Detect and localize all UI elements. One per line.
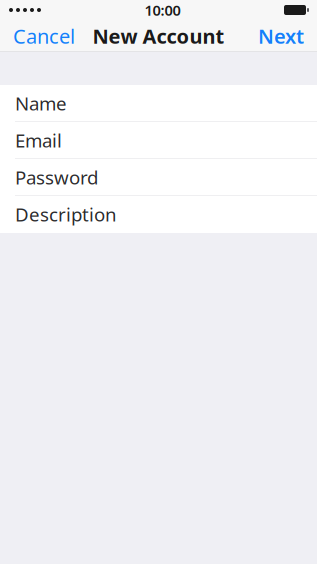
staticText: Description	[15, 202, 117, 227]
staticText: Email	[15, 128, 62, 153]
staticText: 10:00	[144, 0, 180, 20]
button[interactable]: Next	[245, 20, 317, 52]
staticText: New Account	[92, 23, 224, 49]
staticText: Name	[15, 91, 67, 116]
staticText: Cancel	[13, 23, 75, 49]
button[interactable]: Cancel	[0, 20, 88, 52]
button[interactable]: Name	[0, 85, 317, 122]
button[interactable]: Password	[0, 159, 317, 196]
button[interactable]: Email	[0, 122, 317, 159]
staticText: Next	[258, 23, 304, 49]
button[interactable]: Description	[0, 196, 317, 233]
staticText: Password	[15, 165, 98, 190]
